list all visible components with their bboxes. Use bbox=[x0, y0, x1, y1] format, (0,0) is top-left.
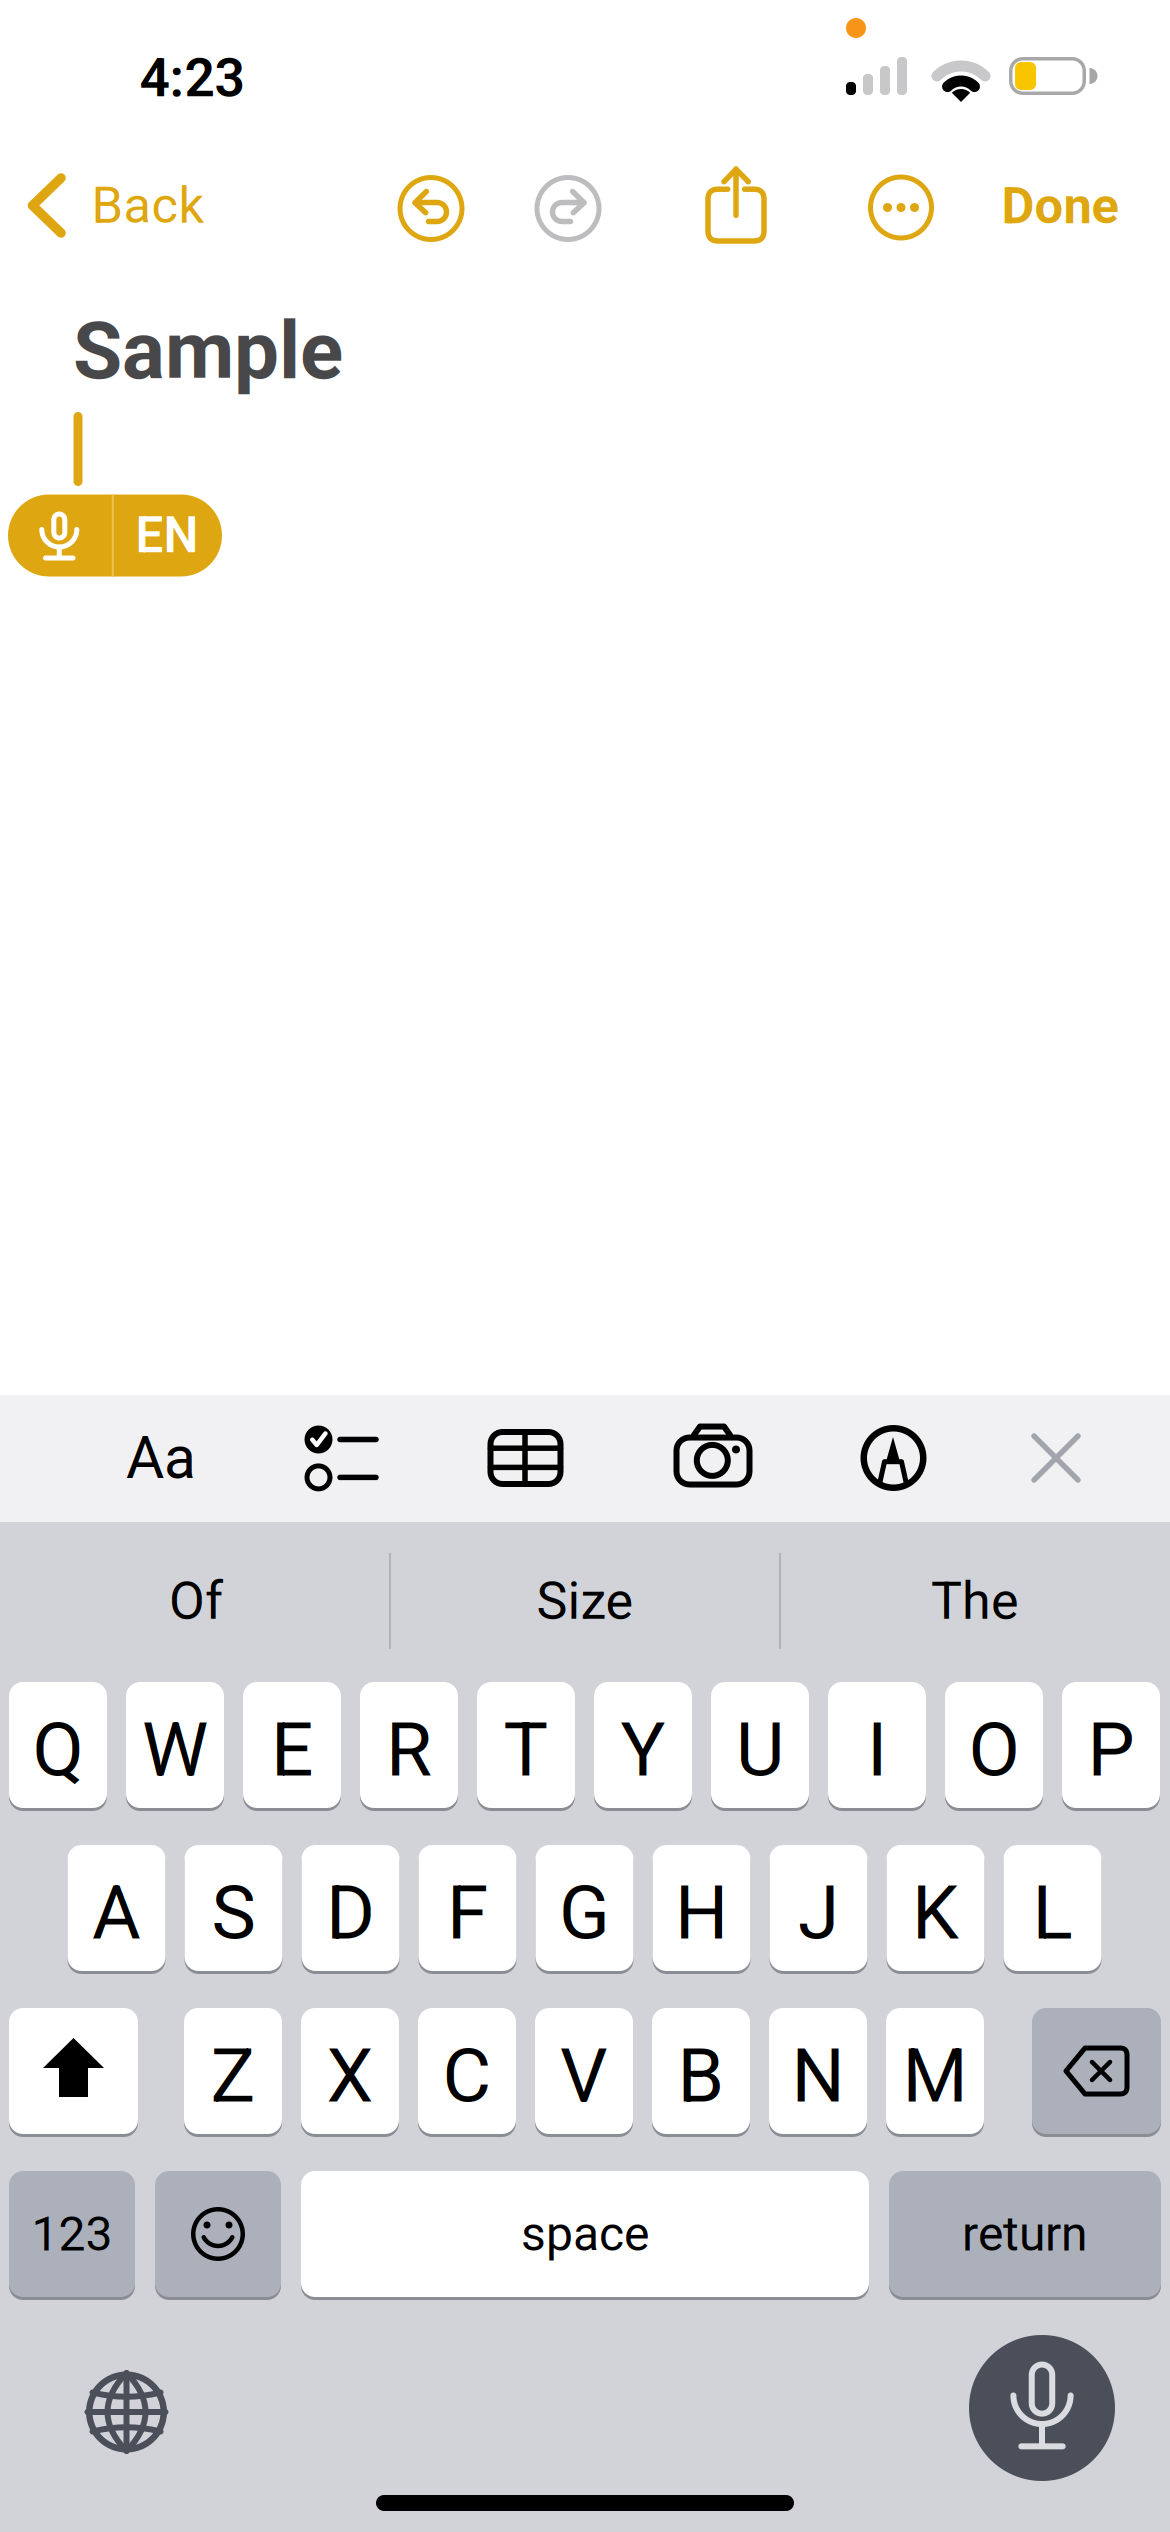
button[interactable]: U bbox=[711, 1682, 809, 1808]
staticText: Sample bbox=[73, 304, 343, 398]
staticText: X bbox=[326, 2032, 373, 2120]
staticText: Q bbox=[32, 1706, 83, 1794]
button[interactable]: S bbox=[184, 1845, 282, 1971]
button[interactable]: I bbox=[828, 1682, 926, 1808]
button[interactable]: Done bbox=[930, 156, 1170, 256]
button[interactable]: Of bbox=[11, 1531, 381, 1671]
staticText: W bbox=[142, 1706, 208, 1794]
staticText: Y bbox=[620, 1706, 665, 1794]
button[interactable]: P bbox=[1062, 1682, 1160, 1808]
button[interactable]: L bbox=[1003, 1845, 1101, 1971]
button[interactable]: Camera bbox=[658, 1413, 768, 1503]
staticText: O bbox=[968, 1706, 1019, 1794]
staticText: V bbox=[560, 2032, 608, 2120]
button[interactable]: X bbox=[301, 2008, 399, 2134]
staticText: U bbox=[736, 1706, 784, 1794]
staticText: J bbox=[798, 1869, 839, 1957]
button[interactable]: Format bbox=[96, 1408, 226, 1508]
staticText: return bbox=[962, 2206, 1088, 2262]
staticText: 4:23 bbox=[139, 47, 244, 109]
button[interactable]: M bbox=[886, 2008, 984, 2134]
button[interactable]: Back bbox=[20, 152, 220, 262]
staticText: S bbox=[211, 1869, 255, 1957]
staticText: N bbox=[791, 2032, 844, 2120]
button[interactable]: Shift bbox=[9, 2008, 138, 2134]
staticText: B bbox=[677, 2032, 724, 2120]
button[interactable]: K bbox=[886, 1845, 984, 1971]
button[interactable]: Delete bbox=[1032, 2008, 1161, 2134]
staticText: Back bbox=[91, 176, 204, 235]
button[interactable]: 123 bbox=[9, 2171, 135, 2297]
button[interactable]: Table bbox=[470, 1413, 580, 1503]
button[interactable]: D bbox=[301, 1845, 399, 1971]
button[interactable]: Z bbox=[184, 2008, 282, 2134]
button[interactable]: R bbox=[360, 1682, 458, 1808]
staticText: G bbox=[559, 1869, 610, 1957]
button[interactable]: Q bbox=[9, 1682, 107, 1808]
staticText: I bbox=[867, 1706, 887, 1794]
button[interactable]: Size bbox=[400, 1531, 770, 1671]
staticText: L bbox=[1032, 1869, 1072, 1957]
button[interactable]: Emoji bbox=[155, 2171, 281, 2297]
staticText: T bbox=[503, 1706, 548, 1794]
button[interactable]: Dictation bbox=[7, 494, 112, 576]
button[interactable]: Share bbox=[691, 150, 781, 250]
button[interactable]: Checklist bbox=[285, 1413, 395, 1503]
button[interactable]: V bbox=[535, 2008, 633, 2134]
button[interactable]: N bbox=[769, 2008, 867, 2134]
button[interactable]: O bbox=[945, 1682, 1043, 1808]
staticText: A bbox=[92, 1869, 141, 1957]
button[interactable]: Y bbox=[594, 1682, 692, 1808]
staticText: E bbox=[271, 1706, 313, 1794]
button[interactable]: J bbox=[769, 1845, 867, 1971]
button[interactable]: A bbox=[67, 1845, 165, 1971]
button[interactable]: Language English bbox=[117, 494, 217, 576]
staticText: Done bbox=[1001, 176, 1118, 236]
staticText: EN bbox=[135, 507, 198, 564]
button[interactable]: Next keyboard bbox=[76, 2362, 176, 2462]
staticText: 123 bbox=[31, 2206, 112, 2262]
staticText: K bbox=[912, 1869, 959, 1957]
staticText: D bbox=[326, 1869, 375, 1957]
staticText: The bbox=[931, 1570, 1019, 1631]
staticText: C bbox=[442, 2032, 491, 2120]
button[interactable]: Redo bbox=[534, 175, 601, 242]
staticText: Z bbox=[210, 2032, 255, 2120]
button[interactable]: T bbox=[477, 1682, 575, 1808]
button[interactable]: H bbox=[652, 1845, 750, 1971]
button[interactable]: Undo bbox=[397, 175, 464, 242]
button[interactable]: Markup bbox=[838, 1413, 948, 1503]
staticText: R bbox=[386, 1706, 432, 1794]
button[interactable]: G bbox=[535, 1845, 633, 1971]
button[interactable]: E bbox=[243, 1682, 341, 1808]
button[interactable]: More bbox=[868, 174, 934, 240]
button[interactable]: Dictate bbox=[969, 2335, 1115, 2481]
button[interactable]: F bbox=[418, 1845, 516, 1971]
button[interactable]: space bbox=[301, 2171, 869, 2297]
staticText: M bbox=[902, 2032, 967, 2120]
staticText: F bbox=[447, 1869, 488, 1957]
button[interactable]: C bbox=[418, 2008, 516, 2134]
staticText: H bbox=[675, 1869, 728, 1957]
button[interactable]: return bbox=[889, 2171, 1161, 2297]
staticText: Aa bbox=[126, 1424, 196, 1492]
staticText: P bbox=[1087, 1706, 1134, 1794]
button[interactable]: The bbox=[790, 1531, 1160, 1671]
staticText: Size bbox=[536, 1570, 633, 1631]
staticText: Of bbox=[169, 1570, 223, 1631]
staticText: space bbox=[521, 2206, 649, 2262]
button[interactable]: B bbox=[652, 2008, 750, 2134]
button[interactable]: W bbox=[126, 1682, 224, 1808]
button[interactable]: Dismiss toolbar bbox=[1001, 1413, 1111, 1503]
